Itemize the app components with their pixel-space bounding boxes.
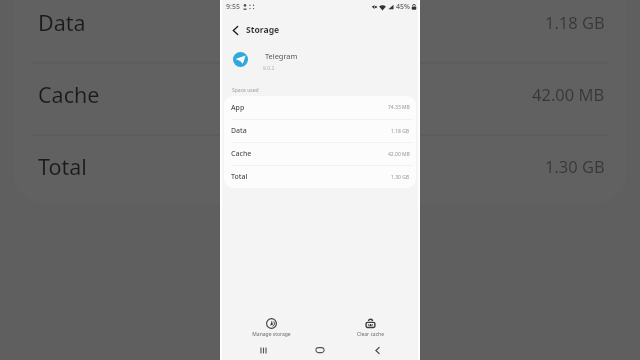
staticText: App (231, 103, 245, 113)
staticText: Manage storage (252, 331, 291, 338)
staticText: Total (38, 152, 87, 180)
staticText: 42.00 MB (532, 83, 605, 105)
button[interactable]: App (224, 96, 416, 119)
button[interactable]: Manage storage (246, 318, 296, 338)
button[interactable]: Home (313, 343, 327, 357)
staticText: 1.30 GB (545, 155, 605, 177)
staticText: Telegram (265, 51, 298, 61)
staticText: 74.33 MB (388, 104, 410, 111)
staticText: Data (38, 8, 86, 36)
button[interactable]: Recents (256, 343, 270, 357)
button[interactable]: Clear cache (345, 318, 395, 338)
staticText: 1.18 GB (391, 128, 410, 135)
button[interactable]: Total (0, 152, 640, 180)
staticText: Cache (231, 149, 252, 159)
staticText: Total (231, 172, 248, 182)
staticText: 9:55 (226, 2, 240, 12)
staticText: 42.00 MB (388, 151, 410, 158)
staticText: Data (231, 126, 247, 136)
staticText: Clear cache (357, 331, 384, 338)
staticText: Cache (38, 80, 100, 108)
button[interactable]: Data (224, 120, 416, 142)
button[interactable]: Back (225, 20, 245, 40)
staticText: Space used (232, 87, 259, 94)
staticText: 9.0.2 (263, 65, 275, 72)
staticText: 45% (396, 2, 410, 12)
button[interactable]: Back (370, 343, 384, 357)
staticText: Storage (246, 24, 280, 36)
staticText: 1.18 GB (545, 11, 605, 33)
button[interactable]: Total (224, 166, 416, 188)
staticText: 1.30 GB (391, 174, 410, 181)
button[interactable]: Data (0, 8, 640, 36)
button[interactable]: Cache (224, 143, 416, 165)
button[interactable]: Cache (0, 80, 640, 108)
